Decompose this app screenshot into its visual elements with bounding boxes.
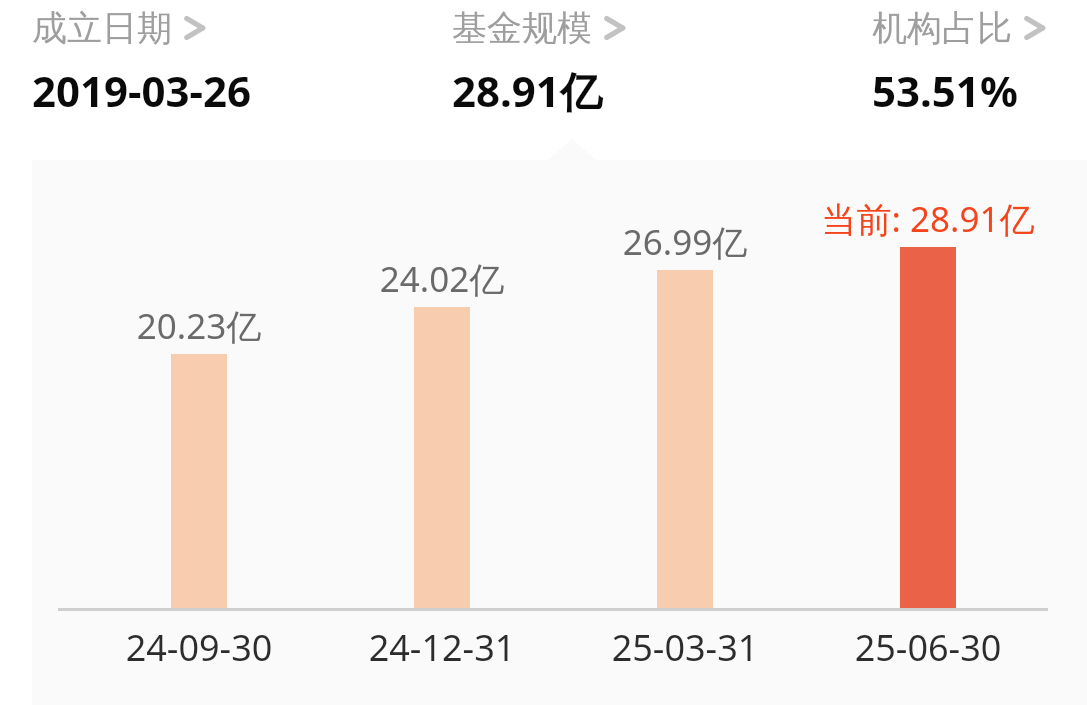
staticText: 2019-03-26 bbox=[32, 62, 252, 119]
staticText: 25-03-31 bbox=[525, 623, 845, 672]
staticText: 当前: 28.91亿 bbox=[768, 195, 1087, 243]
staticText: 24-12-31 bbox=[282, 623, 602, 672]
staticText: 20.23亿 bbox=[39, 302, 359, 350]
staticText: 26.99亿 bbox=[525, 218, 845, 266]
button[interactable]: 基金规模 bbox=[452, 6, 628, 119]
staticText: 24-09-30 bbox=[39, 623, 359, 672]
staticText: 基金规模 bbox=[452, 6, 592, 50]
staticText: 53.51% bbox=[872, 62, 1018, 119]
staticText: 机构占比 bbox=[872, 6, 1012, 50]
staticText: 25-06-30 bbox=[768, 623, 1087, 672]
button[interactable]: 成立日期 bbox=[32, 6, 252, 119]
button[interactable]: 机构占比 bbox=[872, 6, 1048, 119]
staticText: 成立日期 bbox=[32, 6, 172, 50]
staticText: 28.91亿 bbox=[452, 62, 602, 119]
staticText: 24.02亿 bbox=[282, 255, 602, 303]
